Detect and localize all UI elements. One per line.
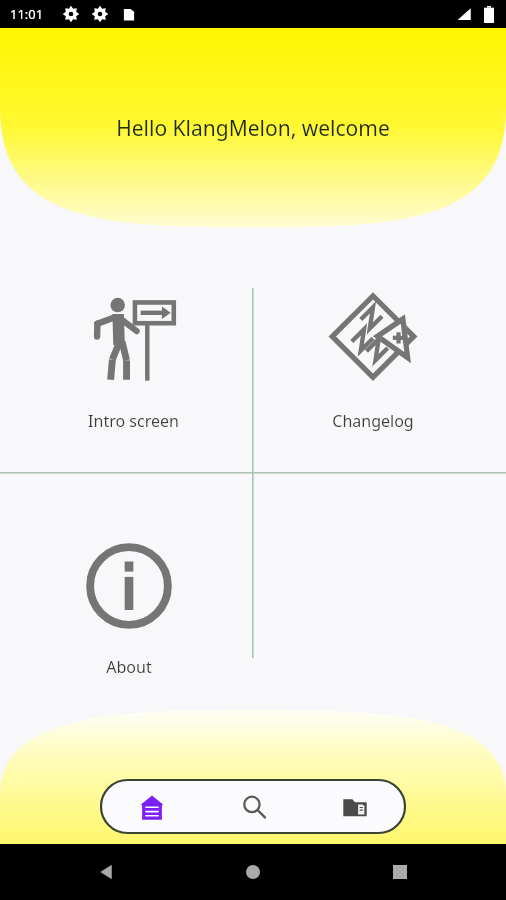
staticText: 11:01 [10,5,44,23]
staticText: Intro screen [88,410,179,432]
staticText: Changelog [332,410,414,432]
button[interactable]: Changelog [254,286,492,472]
button[interactable]: Files [304,780,405,833]
button[interactable]: Recent apps [380,852,420,892]
staticText: Hello KlangMelon, welcome [116,114,390,143]
button[interactable]: Search [203,780,304,833]
button[interactable]: About [10,532,248,718]
button[interactable]: Home [101,780,202,833]
button[interactable]: Back [86,852,126,892]
button[interactable]: Intro screen [14,286,252,472]
staticText: About [106,656,152,678]
button[interactable]: Home [233,852,273,892]
